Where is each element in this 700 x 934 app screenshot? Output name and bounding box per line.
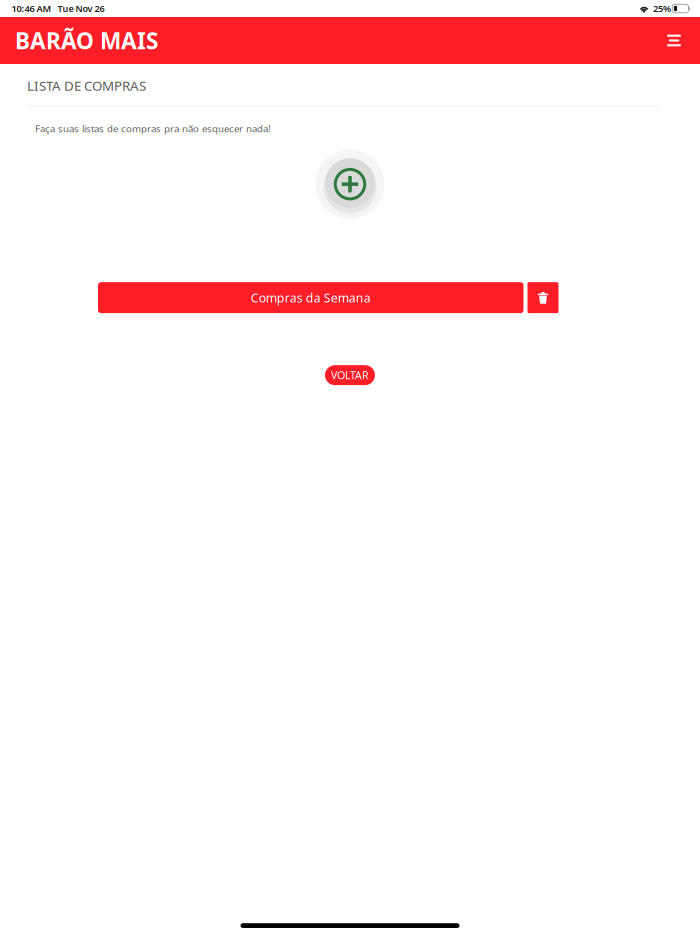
staticText: Faça suas listas de compras pra não esqu… [35,122,271,135]
button[interactable]: Adicionar lista [315,149,385,219]
staticText: Tue Nov 26 [57,2,104,15]
staticText: 10:46 AM [11,2,51,15]
staticText: 25% [653,2,671,15]
staticText: VOLTAR [331,368,369,382]
button[interactable]: Excluir lista [527,282,558,313]
button[interactable]: Compras da Semana [98,282,523,313]
staticText: BARÃO MAIS [15,25,158,56]
staticText: LISTA DE COMPRAS [27,76,146,95]
button[interactable]: VOLTAR [325,365,375,385]
staticText: Compras da Semana [251,289,371,306]
button[interactable]: Menu [659,25,689,55]
